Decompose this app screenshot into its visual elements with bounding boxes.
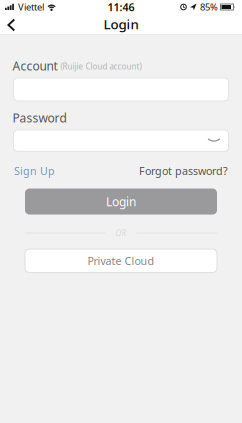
button[interactable]: Private Cloud: [25, 249, 217, 272]
staticText: Private Cloud: [87, 254, 154, 268]
staticText: OR: [115, 228, 126, 238]
button[interactable]: [13, 130, 228, 151]
staticText: 11:46: [107, 0, 134, 14]
staticText: Forgot password?: [139, 164, 228, 178]
button[interactable]: [0, 16, 26, 32]
staticText: (Ruijie Cloud account): [61, 61, 142, 72]
staticText: Sign Up: [14, 164, 55, 178]
staticText: Viettel: [18, 1, 44, 13]
button[interactable]: [13, 78, 228, 101]
staticText: 85%: [200, 1, 218, 13]
staticText: Password: [13, 110, 67, 126]
staticText: Account: [13, 58, 58, 74]
staticText: Login: [106, 194, 136, 209]
staticText: Login: [103, 15, 138, 33]
button[interactable]: Login: [25, 188, 217, 214]
button[interactable]: Forgot password?: [139, 164, 228, 178]
button[interactable]: Sign Up: [14, 164, 55, 178]
